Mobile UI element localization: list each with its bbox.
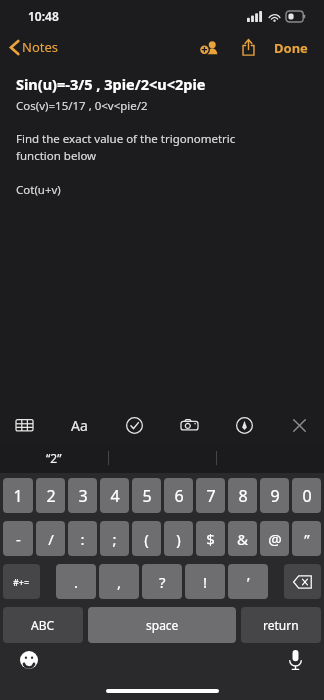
staticText: ( xyxy=(144,529,149,549)
button[interactable]: 2 xyxy=(36,478,65,513)
staticText: ’ xyxy=(247,572,250,592)
button[interactable]: space xyxy=(88,607,236,643)
staticText: ! xyxy=(203,572,208,592)
button[interactable]: 3 xyxy=(68,478,97,513)
button[interactable]: Add people xyxy=(195,35,224,61)
staticText: & xyxy=(237,529,248,549)
staticText: 7 xyxy=(206,485,216,507)
staticText: Find the exact value of the trigonometri… xyxy=(16,131,236,164)
button[interactable]: “2” xyxy=(0,443,108,473)
button[interactable]: Delete xyxy=(284,564,321,599)
button[interactable]: Aa xyxy=(65,410,94,441)
button[interactable]: Markup xyxy=(230,411,259,440)
button[interactable]: ” xyxy=(292,521,321,556)
button[interactable]: 1 xyxy=(3,478,33,513)
staticText: Notes xyxy=(22,38,58,56)
button[interactable]: #+= xyxy=(3,564,40,599)
staticText: , xyxy=(117,572,122,592)
staticText: ) xyxy=(176,529,181,549)
button[interactable]: ABC xyxy=(3,607,83,643)
button[interactable]: / xyxy=(36,521,65,556)
staticText: Cot(u+v) xyxy=(16,182,61,198)
button[interactable]: - xyxy=(3,521,33,556)
button[interactable]: Dictation xyxy=(285,646,306,674)
button[interactable]: 4 xyxy=(100,478,129,513)
button[interactable]: ; xyxy=(100,521,129,556)
staticText: 5 xyxy=(142,485,152,507)
staticText: 9 xyxy=(270,485,280,507)
button[interactable]: 9 xyxy=(260,478,289,513)
button[interactable]: 7 xyxy=(196,478,225,513)
staticText: 2 xyxy=(46,485,56,507)
staticText: Done xyxy=(274,39,308,57)
staticText: ABC xyxy=(31,617,55,633)
staticText: return xyxy=(263,617,299,633)
staticText: - xyxy=(16,529,21,549)
staticText: “2” xyxy=(46,450,62,466)
staticText: ? xyxy=(159,572,166,592)
button[interactable]: Notes xyxy=(0,34,66,60)
staticText: ; xyxy=(112,529,117,549)
staticText: 4 xyxy=(110,485,120,507)
button[interactable]: ( xyxy=(132,521,161,556)
button[interactable]: return xyxy=(241,607,321,643)
button[interactable]: ! xyxy=(185,564,225,599)
staticText: $ xyxy=(206,529,215,549)
staticText: 8 xyxy=(238,485,248,507)
button[interactable]: ) xyxy=(164,521,193,556)
staticText: @ xyxy=(268,529,282,549)
staticText: 3 xyxy=(78,485,88,507)
staticText: : xyxy=(80,529,85,549)
staticText: 10:48 xyxy=(28,8,59,24)
button[interactable]: ? xyxy=(142,564,182,599)
staticText: 6 xyxy=(174,485,184,507)
button[interactable]: $ xyxy=(196,521,225,556)
staticText: 0 xyxy=(302,485,312,507)
button[interactable]: Done xyxy=(272,35,310,61)
button[interactable]: @ xyxy=(260,521,289,556)
button[interactable]: , xyxy=(99,564,139,599)
staticText: Cos(v)=15/17 , 0<v<pie/2 xyxy=(16,98,148,114)
staticText: 1 xyxy=(13,485,23,507)
button[interactable]: Close keyboard xyxy=(285,411,314,440)
button[interactable]: ’ xyxy=(228,564,268,599)
staticText: . xyxy=(74,572,79,592)
button[interactable]: Share xyxy=(236,33,261,62)
button[interactable]: & xyxy=(228,521,257,556)
staticText: space xyxy=(146,617,179,633)
staticText: Sin(u)=-3/5 , 3pie/2<u<2pie xyxy=(16,74,206,94)
button[interactable]: 0 xyxy=(292,478,321,513)
staticText: ” xyxy=(304,529,310,549)
button[interactable]: Table xyxy=(10,411,39,440)
staticText: / xyxy=(48,529,54,549)
button[interactable]: Camera xyxy=(175,411,204,440)
button[interactable]: 6 xyxy=(164,478,193,513)
button[interactable]: 5 xyxy=(132,478,161,513)
staticText: #+= xyxy=(13,576,30,588)
button[interactable]: : xyxy=(68,521,97,556)
staticText: Aa xyxy=(71,416,88,435)
button[interactable]: Checklist xyxy=(120,411,149,440)
button[interactable]: Emoji xyxy=(16,647,42,673)
button[interactable]: 8 xyxy=(228,478,257,513)
button[interactable]: . xyxy=(56,564,96,599)
